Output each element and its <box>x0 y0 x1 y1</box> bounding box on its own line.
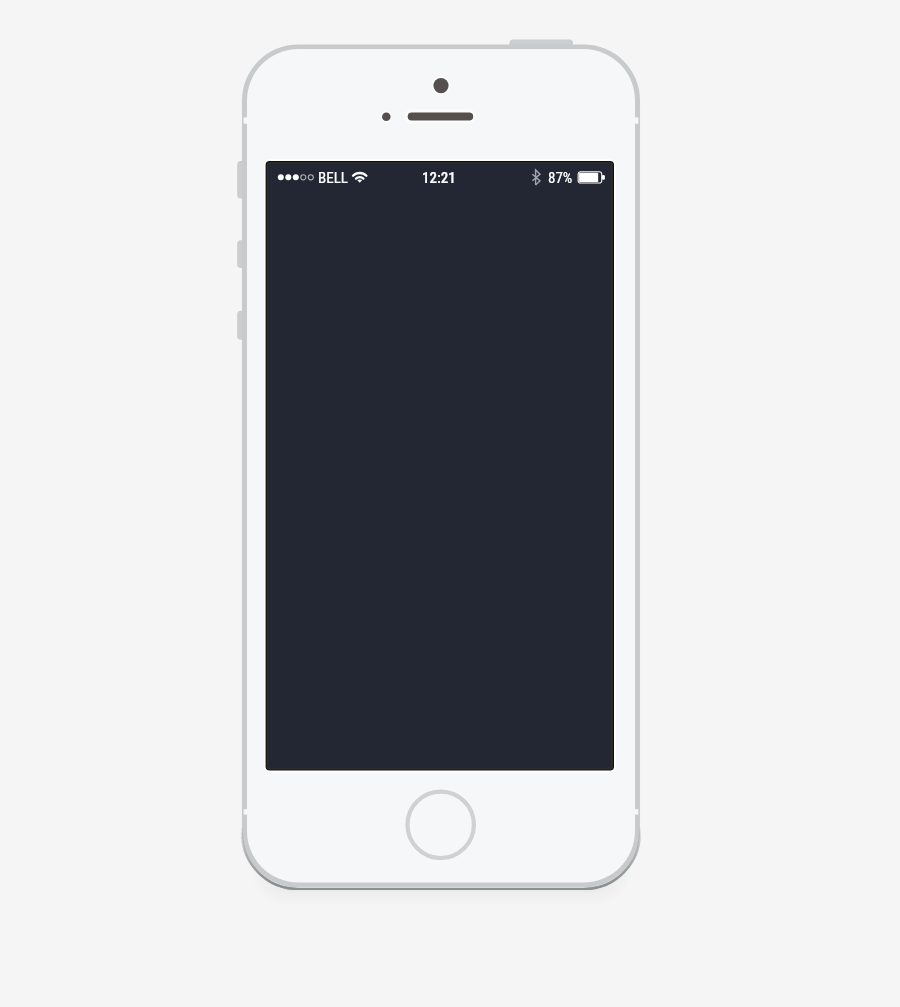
staticText: 87% <box>548 169 573 187</box>
staticText: BELL <box>318 169 348 187</box>
button[interactable]: Home <box>405 789 476 860</box>
button[interactable]: Volume up <box>237 240 247 268</box>
button[interactable]: Sleep / wake <box>510 40 574 51</box>
button[interactable]: Screen <box>266 161 614 771</box>
button[interactable]: Volume down <box>237 311 247 340</box>
staticText: 12:21 <box>422 169 456 187</box>
button[interactable]: Ring / silent switch <box>237 161 247 199</box>
